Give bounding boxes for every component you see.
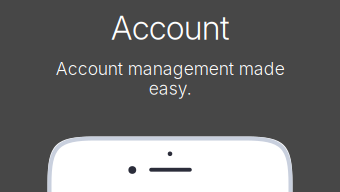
staticText: Account management made easy. <box>55 58 284 99</box>
staticText: Account <box>111 8 229 47</box>
